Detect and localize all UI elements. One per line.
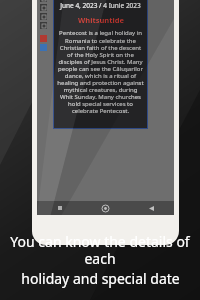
button[interactable]: Calendar tool	[40, 13, 47, 20]
button[interactable]: Calendar tool	[40, 0, 47, 2]
staticText: holiday and special date	[21, 269, 180, 288]
button[interactable]: 8	[104, 0, 121, 1]
button[interactable]: 10	[138, 0, 155, 1]
staticText: 10	[143, 0, 150, 1]
staticText: June 4, 2023 / 4 Iunie 2023	[60, 1, 141, 10]
button[interactable]: Home	[82, 201, 128, 215]
staticText: Whitsuntide	[78, 15, 124, 25]
button[interactable]: Back	[128, 201, 174, 215]
button[interactable]: June 4, 2023 / 4 Iunie 2023	[53, 0, 148, 129]
button[interactable]: Calendar tool	[40, 22, 47, 29]
staticText: Pentecost is a legal holiday in Romania …	[57, 29, 144, 114]
button[interactable]: Calendar tool	[40, 4, 47, 11]
button[interactable]: Recents	[37, 201, 82, 215]
staticText: You can know the details of each	[6, 232, 194, 268]
button[interactable]: 5	[50, 0, 68, 1]
